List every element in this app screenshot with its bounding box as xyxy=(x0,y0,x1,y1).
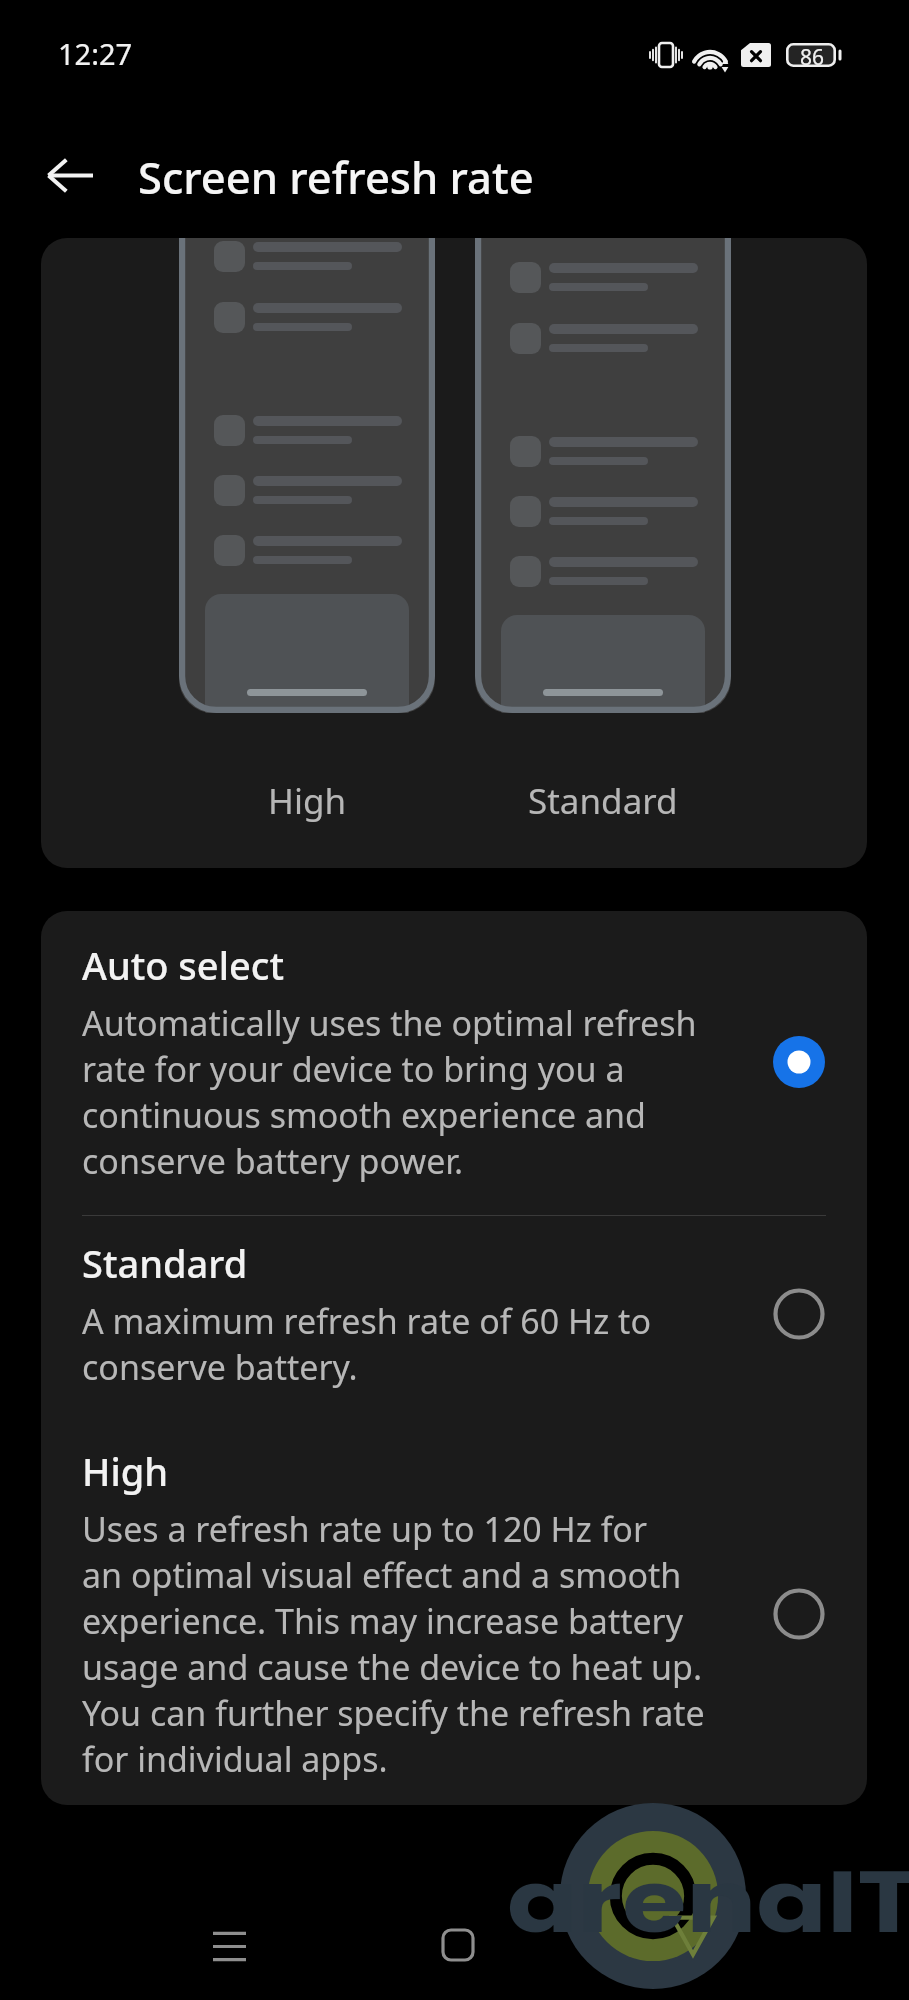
button[interactable]: Home xyxy=(418,1905,498,1985)
staticText: Standard xyxy=(528,777,678,825)
staticText: Screen refresh rate xyxy=(138,147,534,206)
button[interactable]: Back xyxy=(26,131,114,219)
button[interactable]: Back xyxy=(639,1905,719,1985)
staticText: High xyxy=(268,777,347,825)
button[interactable]: Standard xyxy=(41,1216,867,1416)
button[interactable]: High xyxy=(41,1416,867,1805)
staticText: Uses a refresh rate up to 120 Hz for an … xyxy=(82,1506,705,1782)
staticText: 12:27 xyxy=(58,34,133,73)
staticText: High xyxy=(82,1445,169,1497)
staticText: Auto select xyxy=(82,939,284,991)
staticText: 86 xyxy=(800,43,825,67)
staticText: Automatically uses the optimal refresh r… xyxy=(82,1000,697,1184)
staticText: A maximum refresh rate of 60 Hz to conse… xyxy=(82,1298,651,1390)
button[interactable]: Recent apps xyxy=(189,1906,269,1986)
staticText: arenaIT xyxy=(507,1841,909,1963)
staticText: Standard xyxy=(82,1237,248,1289)
button[interactable]: Auto select xyxy=(41,911,867,1215)
